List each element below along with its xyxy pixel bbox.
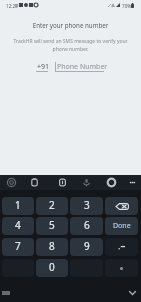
- button[interactable]: 9: [70, 238, 103, 256]
- button[interactable]: Backspace: [105, 197, 138, 215]
- button[interactable]: 4: [2, 217, 34, 235]
- button[interactable]: Hide keyboard: [126, 287, 138, 299]
- staticText: 9: [84, 239, 90, 253]
- staticText: 8: [49, 239, 55, 253]
- button[interactable]: 7: [2, 238, 34, 256]
- button[interactable]: 5: [36, 217, 68, 235]
- staticText: +91: [37, 62, 50, 72]
- button[interactable]: Clipboard: [27, 175, 41, 189]
- staticText: Phone Number: [57, 62, 108, 72]
- button[interactable]: Voice input: [79, 175, 93, 189]
- staticText: Enter your phone number: [0, 21, 141, 29]
- button[interactable]: Settings: [104, 175, 118, 189]
- staticText: 0: [49, 260, 55, 274]
- staticText: Done: [113, 221, 131, 231]
- staticText: TrackHR will send an SMS message to veri…: [0, 38, 141, 53]
- button[interactable]: More options: [125, 175, 139, 189]
- staticText: 3: [84, 198, 90, 212]
- button[interactable]: [105, 238, 138, 256]
- staticText: 6: [84, 218, 90, 232]
- button[interactable]: Stickers: [55, 175, 69, 189]
- button[interactable]: 6: [70, 217, 103, 235]
- staticText: 4: [15, 218, 21, 232]
- button[interactable]: [105, 259, 138, 277]
- button[interactable]: 3: [70, 197, 103, 215]
- other: Backspace: [114, 199, 129, 214]
- staticText: 12:23: [6, 3, 18, 9]
- button[interactable]: 1: [2, 197, 34, 215]
- staticText: 5: [49, 218, 55, 232]
- staticText: 70%: [122, 3, 132, 9]
- staticText: 1: [15, 198, 21, 212]
- button[interactable]: Google Assistant: [4, 175, 18, 189]
- staticText: 7: [15, 239, 21, 253]
- staticText: 2: [49, 198, 55, 212]
- button[interactable]: 0: [36, 259, 68, 277]
- button[interactable]: Done: [105, 217, 138, 235]
- button[interactable]: 8: [36, 238, 68, 256]
- button[interactable]: 2: [36, 197, 68, 215]
